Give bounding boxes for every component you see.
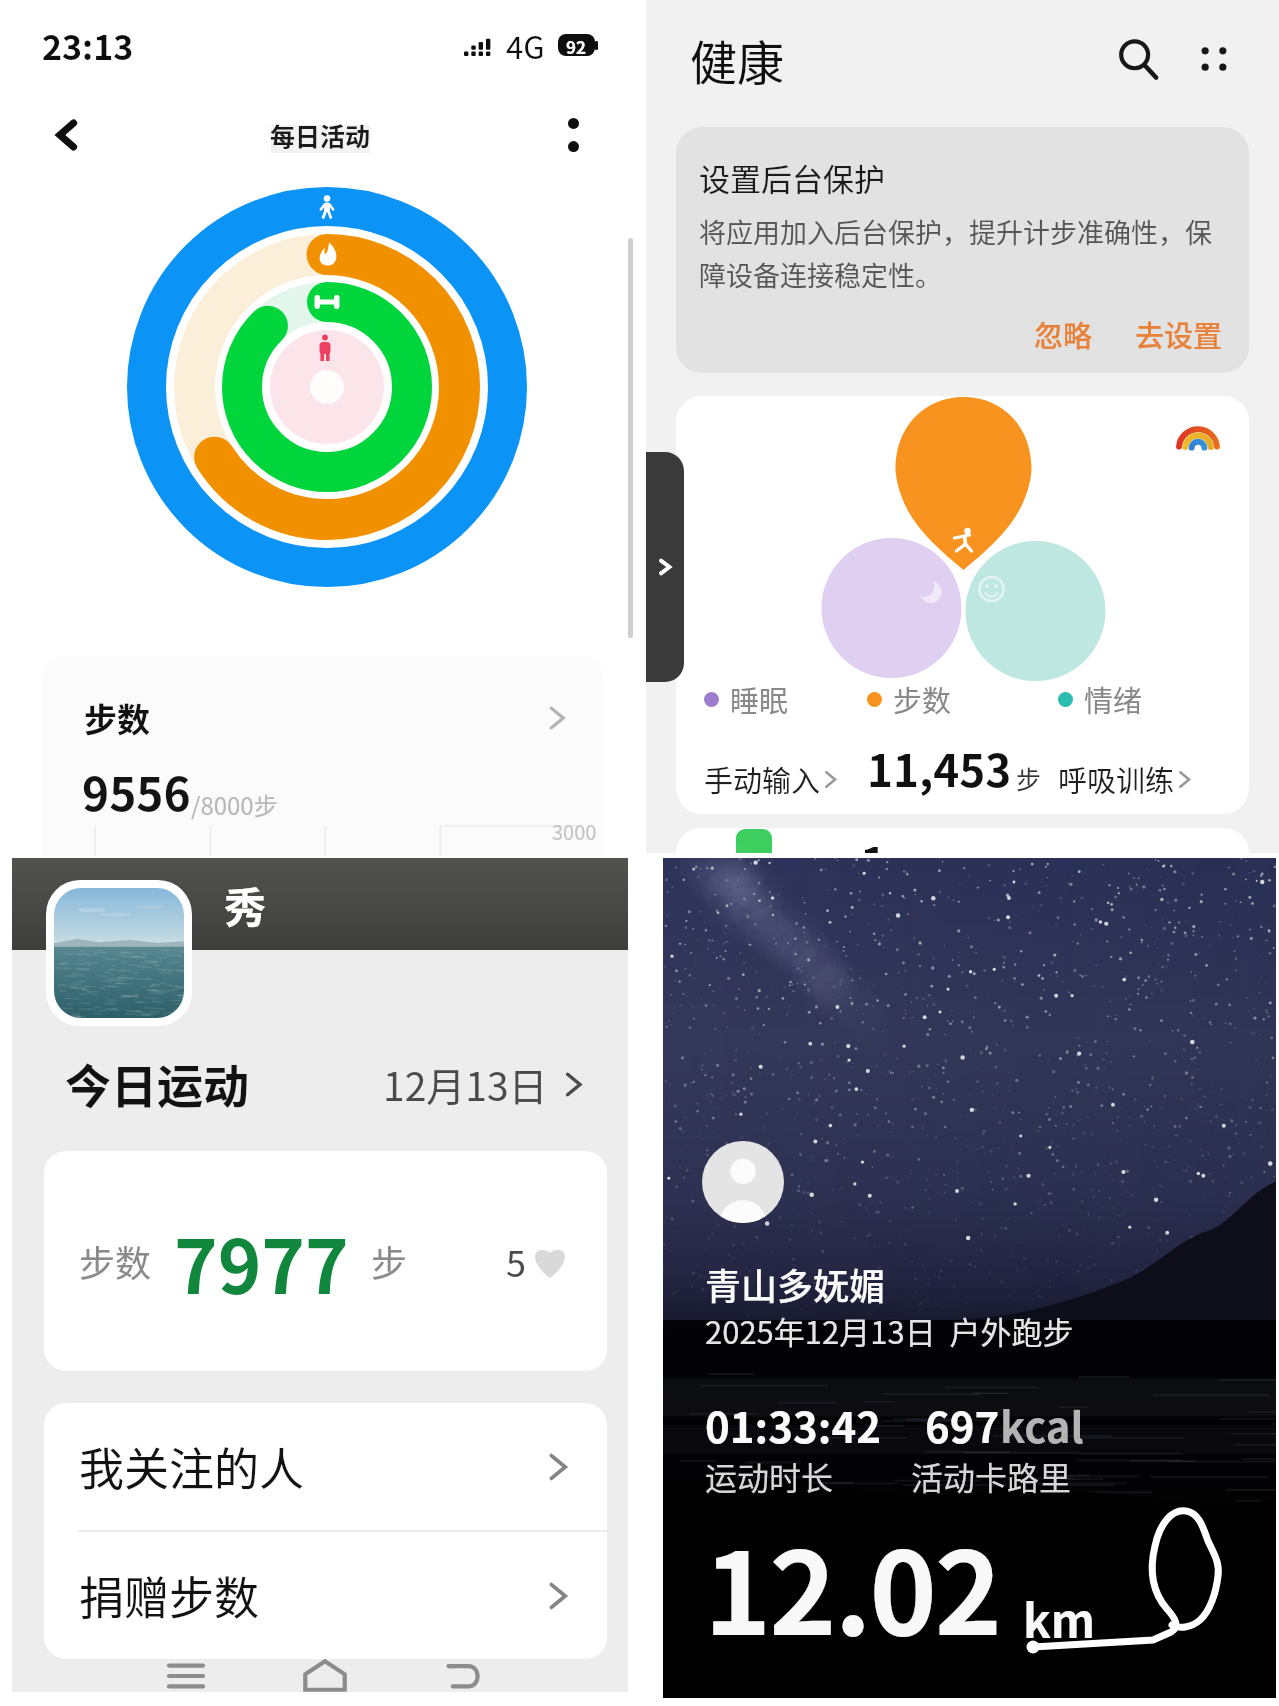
staticText: 设置后台保护 (699, 155, 885, 200)
button[interactable]: Back (417, 1659, 509, 1692)
staticText: 697 (925, 1394, 1000, 1455)
button[interactable]: More (1183, 28, 1245, 90)
staticText: 今日运动 (65, 1050, 249, 1117)
button[interactable]: Search (1107, 28, 1169, 90)
button[interactable]: Back (40, 108, 94, 162)
staticText: /8000步 (191, 787, 278, 822)
staticText: 01:33:42 (705, 1394, 881, 1455)
staticText: 每日活动 (270, 117, 371, 153)
button[interactable]: Profile picture (702, 1141, 784, 1223)
button[interactable]: 步数 (44, 1151, 607, 1371)
staticText: 青山多妩媚 (705, 1258, 886, 1310)
staticText: 7977 (174, 1208, 349, 1315)
staticText: 2025年12月13日 户外跑步 (705, 1308, 1074, 1353)
staticText: 将应用加入后台保护，提升计步准确性，保障设备连接稳定性。 (699, 212, 1229, 294)
button[interactable]: 12月13日 (383, 1056, 587, 1112)
staticText: 运动时长 (705, 1453, 911, 1499)
button[interactable]: 手动输入 (704, 758, 867, 800)
staticText: 去设置 (1135, 313, 1223, 355)
staticText: 睡眠 (730, 678, 789, 720)
staticText: 捐赠步数 (79, 1563, 260, 1628)
staticText: 忽略 (1034, 313, 1093, 355)
button[interactable]: 捐赠步数 (44, 1532, 607, 1659)
button[interactable]: 呼吸训练 (1058, 758, 1249, 800)
staticText: 步数 (84, 694, 150, 742)
button[interactable]: 我关注的人 (44, 1403, 607, 1530)
button[interactable]: 忽略 (1024, 307, 1103, 361)
staticText: 步 (371, 1235, 408, 1287)
button[interactable]: 去设置 (1129, 307, 1229, 361)
button[interactable]: 设置后台保护 (676, 127, 1249, 373)
staticText: 23:13 (42, 21, 134, 70)
button[interactable]: Profile picture (54, 888, 184, 1018)
button[interactable]: Rainbow badge (676, 396, 1249, 814)
staticText: 4G (506, 23, 545, 68)
staticText: 活动卡路里 (911, 1453, 1072, 1499)
button[interactable]: 下一张健康卡片 (676, 828, 1249, 853)
staticText: 1 (860, 828, 888, 853)
staticText: 12月13日 (383, 1056, 548, 1112)
staticText: 9556 (82, 758, 191, 825)
button[interactable]: 步数 (42, 656, 603, 856)
staticText: kcal (1000, 1394, 1084, 1455)
button[interactable]: Recents (140, 1659, 232, 1692)
staticText: 步数 (893, 678, 952, 720)
staticText: 步 (1016, 760, 1042, 796)
staticText: 步数 (79, 1235, 152, 1287)
button[interactable]: More options (546, 108, 600, 162)
button[interactable]: Rainbow badge (1147, 396, 1249, 462)
staticText: 手动输入 (704, 758, 821, 800)
staticText: 3000 (552, 817, 597, 846)
staticText: 5 (506, 1235, 526, 1287)
staticText: 12.02 (704, 1503, 1001, 1668)
staticText: 呼吸训练 (1058, 758, 1175, 800)
staticText: 情绪 (1084, 678, 1143, 720)
staticText: km (1023, 1585, 1096, 1652)
staticText: 秀 (224, 874, 267, 935)
button[interactable]: Open drawer (646, 452, 684, 682)
staticText: 我关注的人 (79, 1434, 305, 1499)
staticText: 健康 (690, 25, 784, 93)
button[interactable]: Home (279, 1659, 371, 1692)
staticText: 92 (566, 34, 587, 56)
staticText: 11,453 (867, 736, 1012, 800)
